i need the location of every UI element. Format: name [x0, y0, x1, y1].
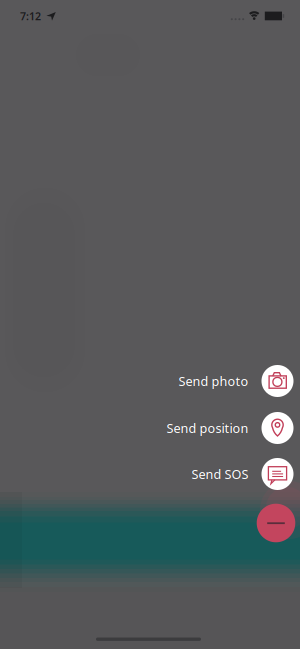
button[interactable]: Send SOS [191, 458, 293, 490]
button[interactable]: Send photo [178, 365, 293, 397]
staticText: 7:12 [20, 9, 41, 23]
button[interactable]: Close menu [257, 504, 295, 542]
staticText: Send SOS [191, 465, 248, 483]
staticText: Send position [166, 419, 248, 437]
staticText: Send photo [178, 372, 248, 390]
button[interactable]: Send position [166, 412, 293, 444]
